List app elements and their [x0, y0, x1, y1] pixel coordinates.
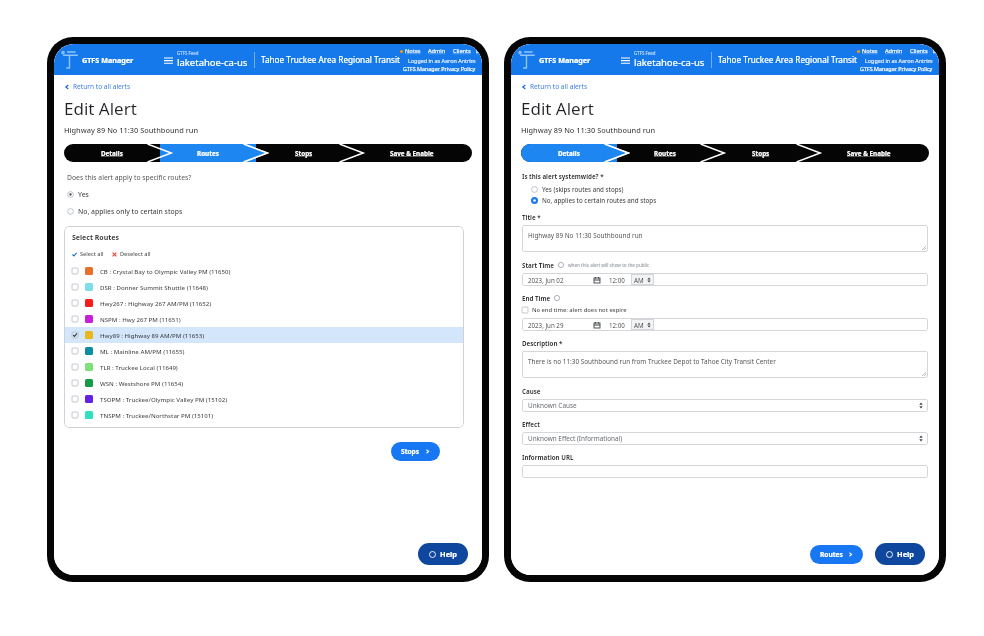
button[interactable]: Clients	[910, 47, 928, 55]
button[interactable]: AM	[631, 319, 654, 330]
button[interactable]: Return to all alerts	[521, 82, 588, 91]
staticText: Tahoe Truckee Area Regional Transit	[261, 54, 400, 65]
staticText: Logged in as Aaron Antrim	[865, 57, 933, 64]
staticText: Select Routes	[72, 233, 120, 243]
staticText: Unknown Effect (Informational)	[528, 434, 623, 443]
staticText: when this alert will show to the public	[568, 262, 650, 268]
button[interactable]: Help	[875, 543, 925, 565]
button[interactable]: Routes	[160, 144, 256, 162]
button[interactable]: Select all	[72, 250, 104, 258]
button[interactable]: DSR : Donner Summit Shuttle (11648)	[64, 279, 464, 295]
button[interactable]: AM	[631, 274, 654, 285]
staticText: Hwy89 : Highway 89 AM/PM (11653)	[100, 331, 205, 339]
staticText: laketahoe-ca-us	[177, 56, 248, 69]
button[interactable]: TLR : Truckee Local (11649)	[64, 359, 464, 375]
staticText: Start Time	[522, 261, 555, 269]
staticText: Yes (skips routes and stops)	[542, 185, 624, 193]
staticText: Select all	[80, 250, 104, 258]
button[interactable]: Stops	[391, 442, 440, 461]
staticText: Title *	[522, 213, 541, 221]
staticText: laketahoe-ca-us	[634, 56, 705, 69]
button[interactable]: No end time: alert does not expire	[522, 306, 627, 314]
button[interactable]: Menu	[619, 52, 631, 68]
staticText: AM	[634, 276, 644, 284]
button[interactable]: Details	[64, 144, 160, 162]
staticText: Routes	[820, 550, 843, 559]
button[interactable]: Admin	[885, 47, 903, 55]
button[interactable]: Admin	[428, 47, 446, 55]
button[interactable]: Yes	[67, 190, 89, 199]
staticText: ML : Mainline AM/PM (11655)	[100, 347, 185, 355]
staticText: DSR : Donner Summit Shuttle (11648)	[100, 283, 208, 291]
staticText: Details	[558, 149, 580, 158]
staticText: Help	[440, 549, 457, 559]
button[interactable]: TSOPM : Truckee/Olympic Valley PM (15102…	[64, 391, 464, 407]
staticText: Details	[101, 149, 123, 158]
button[interactable]: 2023, Jun 29	[522, 318, 928, 331]
button[interactable]: Deselect all	[112, 250, 151, 258]
staticText: Help	[897, 549, 914, 559]
button[interactable]: 2023, Jun 02	[522, 273, 928, 286]
button[interactable]: Yes (skips routes and stops)	[531, 185, 624, 193]
button[interactable]: No, applies only to certain stops	[67, 207, 183, 216]
staticText: Edit Alert	[521, 97, 594, 120]
staticText: Return to all alerts	[530, 82, 588, 91]
staticText: Information URL	[522, 453, 574, 461]
staticText: AM	[634, 321, 644, 329]
staticText: Yes	[78, 190, 89, 199]
button[interactable]: Notes	[405, 47, 421, 55]
button[interactable]: CB : Crystal Bay to Olympic Valley PM (1…	[64, 263, 464, 279]
staticText: 2023, Jun 29	[528, 321, 564, 329]
staticText: No, applies only to certain stops	[78, 207, 183, 216]
button[interactable]: ML : Mainline AM/PM (11655)	[64, 343, 464, 359]
staticText: Stops	[401, 447, 420, 456]
staticText: GTFS Feed	[177, 50, 199, 56]
staticText: GTFS Manager	[539, 55, 591, 65]
staticText: Highway 89 No 11:30 Southbound run	[64, 125, 199, 135]
button[interactable]: Clients	[453, 47, 471, 55]
button[interactable]: NSPM : Hwy 267 PM (11651)	[64, 311, 464, 327]
button[interactable]: Save & Enable	[352, 144, 472, 162]
staticText: Stops	[752, 149, 770, 158]
staticText: Does this alert apply to specific routes…	[67, 173, 192, 182]
staticText: 12:00	[609, 276, 625, 284]
button[interactable]: Routes	[810, 545, 863, 564]
staticText: Deselect all	[120, 250, 151, 258]
button[interactable]: GTFS Manager Privacy Policy	[403, 65, 476, 72]
staticText: Routes	[654, 149, 676, 158]
staticText: WSN : Westshore PM (11654)	[100, 379, 184, 387]
button[interactable]: TNSPM : Truckee/Northstar PM (15101)	[64, 407, 464, 423]
button[interactable]: Return to all alerts	[64, 82, 131, 91]
staticText: No, applies to certain routes and stops	[542, 196, 657, 204]
button[interactable]: Unknown Effect (Informational)	[522, 432, 928, 445]
staticText: Hwy267 : Highway 267 AM/PM (11652)	[100, 299, 212, 307]
button[interactable]: Details	[521, 144, 617, 162]
staticText: Routes	[197, 149, 219, 158]
staticText: 12:00	[609, 321, 625, 329]
button[interactable]: Stops	[713, 144, 809, 162]
button[interactable]: No, applies to certain routes and stops	[531, 196, 657, 204]
staticText: Return to all alerts	[73, 82, 131, 91]
button[interactable]: Stops	[256, 144, 352, 162]
button[interactable]: Routes	[617, 144, 713, 162]
staticText: Highway 89 No 11:30 Southbound run	[521, 125, 656, 135]
button[interactable]: Save & Enable	[809, 144, 929, 162]
staticText: TSOPM : Truckee/Olympic Valley PM (15102…	[100, 395, 228, 403]
staticText: GTFS Feed	[634, 50, 656, 56]
button[interactable]: GTFS Manager Privacy Policy	[860, 65, 933, 72]
staticText: TNSPM : Truckee/Northstar PM (15101)	[100, 411, 214, 419]
button[interactable]: Hwy267 : Highway 267 AM/PM (11652)	[64, 295, 464, 311]
staticText: Logged in as Aaron Antrim	[408, 57, 476, 64]
button[interactable]: Menu	[162, 52, 174, 68]
staticText: Save & Enable	[847, 149, 891, 158]
button[interactable]: Hwy89 : Highway 89 AM/PM (11653)	[64, 327, 464, 343]
staticText: 2023, Jun 02	[528, 276, 564, 284]
staticText: Is this alert systemwide? *	[522, 172, 604, 180]
staticText: Cause	[522, 387, 541, 395]
button[interactable]: WSN : Westshore PM (11654)	[64, 375, 464, 391]
staticText: Highway 89 No 11:30 Southbound run	[528, 231, 643, 240]
staticText: Description *	[522, 339, 563, 347]
button[interactable]: Help	[418, 543, 468, 565]
button[interactable]: Unknown Cause	[522, 399, 928, 412]
button[interactable]: Notes	[862, 47, 878, 55]
